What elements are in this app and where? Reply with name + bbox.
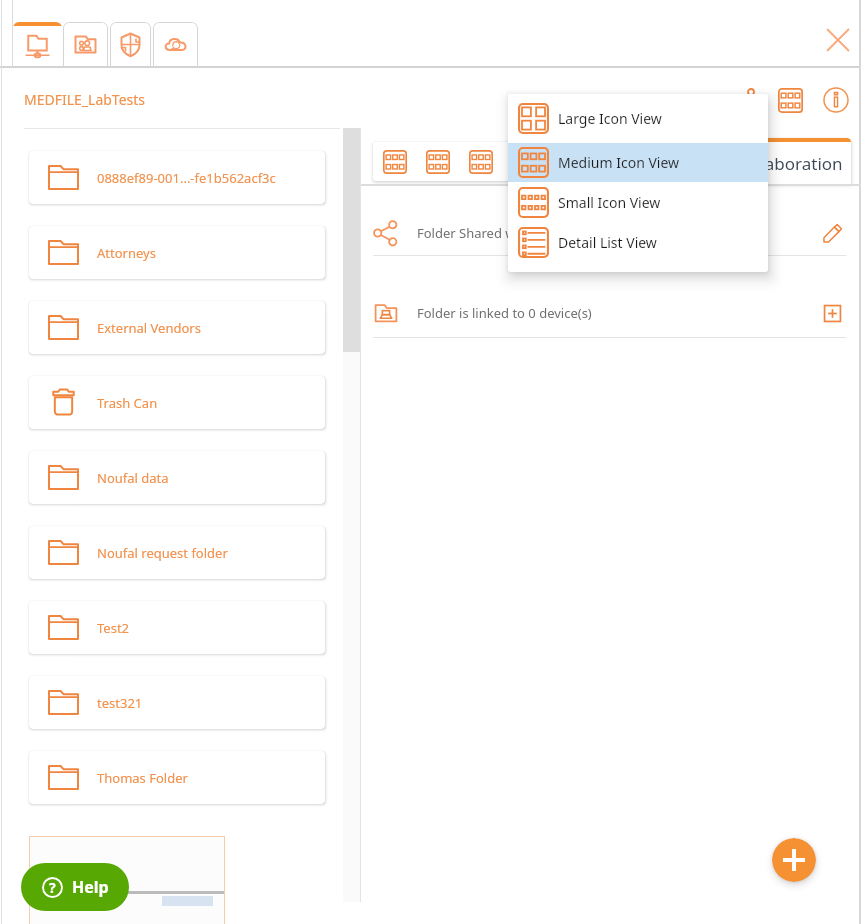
staticText: Folder Shared with 0 user(s) — [417, 224, 587, 242]
button[interactable]: Test2 — [29, 601, 325, 654]
button[interactable]: Noufal data — [29, 451, 325, 504]
button[interactable]: Tab — [153, 22, 198, 67]
button[interactable]: Attorneys — [29, 226, 325, 279]
button[interactable]: Edit — [818, 219, 846, 247]
button[interactable]: Tab — [13, 22, 62, 67]
staticText: Trash Can — [97, 394, 158, 412]
button[interactable]: Close — [822, 24, 854, 56]
staticText: Noufal data — [97, 469, 169, 487]
button[interactable]: Info — [822, 86, 850, 114]
staticText: Medium Icon View — [558, 153, 680, 172]
button[interactable]: Icon view — [416, 142, 459, 181]
button[interactable]: Icon view — [459, 142, 502, 181]
button[interactable]: Small Icon View — [508, 182, 768, 222]
button[interactable]: ? — [21, 863, 129, 911]
staticText: test321 — [97, 694, 143, 712]
staticText: Attorneys — [97, 244, 156, 262]
button[interactable]: External Vendors — [29, 301, 325, 354]
button[interactable]: Medium Icon View — [508, 143, 768, 182]
button[interactable]: Folder is linked to 0 device(s) — [373, 293, 846, 333]
button[interactable]: Trash Can — [29, 376, 325, 429]
button[interactable]: Detail List View — [508, 222, 768, 262]
staticText: Collaboration — [735, 152, 843, 175]
button[interactable]: Tab — [63, 22, 108, 67]
staticText: ? — [49, 878, 56, 897]
button[interactable]: Icon view — [502, 142, 545, 181]
staticText: Large Icon View — [558, 109, 662, 128]
button[interactable]: Noufal request folder — [29, 526, 325, 579]
staticText: Noufal request folder — [97, 544, 228, 562]
button[interactable]: 0888ef89-001...-fe1b562acf3c — [29, 151, 325, 204]
button[interactable]: Change view — [776, 86, 804, 114]
button[interactable]: test321 — [29, 676, 325, 729]
staticText: External Vendors — [97, 319, 201, 337]
button[interactable]: Folder Shared with 0 user(s) — [373, 213, 846, 253]
button[interactable]: Add — [772, 838, 816, 882]
staticText: MEDFILE_LabTests — [24, 90, 146, 109]
staticText: 0888ef89-001...-fe1b562acf3c — [97, 169, 276, 187]
button[interactable]: Icon view — [373, 142, 416, 181]
button[interactable]: Collaboration — [676, 138, 851, 184]
staticText: Folder is linked to 0 device(s) — [417, 304, 592, 322]
staticText: Thomas Folder — [97, 769, 188, 787]
button[interactable]: Large Icon View — [508, 94, 768, 143]
staticText: Test2 — [97, 619, 130, 637]
staticText: Help — [72, 876, 109, 898]
button[interactable]: Tab — [110, 22, 151, 67]
button[interactable] — [29, 836, 225, 924]
button[interactable]: Thomas Folder — [29, 751, 325, 804]
button[interactable]: Icon view — [545, 142, 588, 181]
staticText: Small Icon View — [558, 193, 661, 212]
staticText: Detail List View — [558, 233, 657, 252]
button[interactable]: Add device — [818, 299, 846, 327]
